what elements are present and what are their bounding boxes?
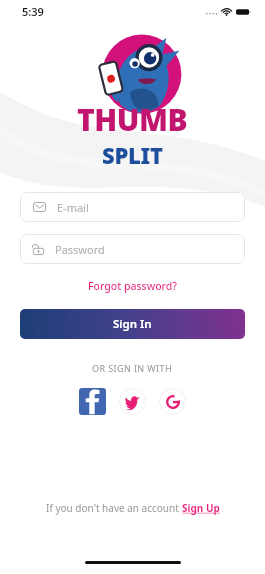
button[interactable]: Forgot password? (0, 279, 265, 293)
button[interactable]: Sign In (20, 309, 245, 339)
button[interactable]: Sign in with Twitter (119, 388, 146, 415)
staticText: Forgot password? (88, 279, 178, 293)
staticText: THUMB (77, 99, 188, 140)
staticText: Password (55, 242, 105, 257)
staticText: OR SIGN IN WITH (92, 362, 173, 374)
button[interactable]: Password (20, 234, 245, 264)
button[interactable]: Sign in with Facebook (79, 388, 106, 415)
staticText: Sign In (113, 316, 152, 332)
staticText: SPLIT (102, 140, 163, 170)
button[interactable]: Sign in with Google (159, 388, 186, 415)
button[interactable]: E-mail (20, 192, 245, 222)
staticText: 5:39 (22, 4, 44, 19)
staticText: E-mail (57, 200, 89, 215)
staticText: Sign Up (182, 501, 220, 515)
staticText: If you don't have an account (46, 501, 182, 515)
button[interactable]: Sign Up (182, 501, 220, 515)
